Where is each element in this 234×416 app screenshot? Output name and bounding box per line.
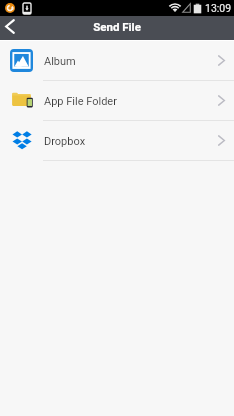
button[interactable]: Dropbox [0,121,234,160]
staticText: App File Folder [44,95,117,108]
button[interactable]: Back [0,16,19,40]
staticText: Dropbox [44,135,86,148]
button[interactable]: App File Folder [0,81,234,120]
staticText: 13:09 [205,2,232,14]
staticText: Send File [93,20,141,33]
staticText: Album [44,55,76,68]
button[interactable]: Album [0,41,234,80]
